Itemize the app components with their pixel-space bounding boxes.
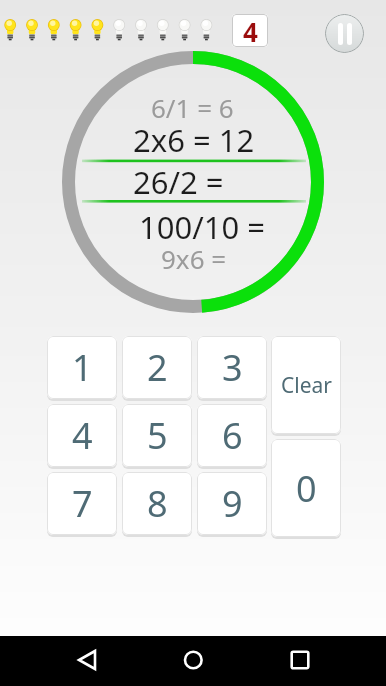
button[interactable]: 4 xyxy=(47,404,117,467)
staticText: 6/1 = 6 xyxy=(151,90,234,125)
staticText: 1 xyxy=(72,343,93,392)
staticText: 4 xyxy=(72,411,93,460)
staticText: 0 xyxy=(296,464,317,513)
button[interactable]: 2 xyxy=(122,336,192,399)
staticText: 7 xyxy=(72,479,93,528)
button[interactable]: 1 xyxy=(47,336,117,399)
button[interactable]: 5 xyxy=(122,404,192,467)
staticText: 9x6 = xyxy=(161,241,227,276)
button[interactable]: 7 xyxy=(47,472,117,535)
staticText: 4 xyxy=(243,14,258,47)
button[interactable]: 9 xyxy=(197,472,267,535)
staticText: 26/2 = xyxy=(133,161,224,203)
staticText: 3 xyxy=(222,343,243,392)
staticText: 100/10 = xyxy=(139,206,265,248)
staticText: 6 xyxy=(222,411,243,460)
staticText: Clear xyxy=(281,371,332,400)
staticText: 9 xyxy=(222,479,243,528)
button[interactable]: 6 xyxy=(197,404,267,467)
staticText: 8 xyxy=(147,479,168,528)
button[interactable]: 3 xyxy=(197,336,267,399)
button[interactable] xyxy=(0,636,128,686)
button[interactable] xyxy=(128,636,257,686)
button[interactable]: 8 xyxy=(122,472,192,535)
button[interactable] xyxy=(325,14,364,53)
button[interactable] xyxy=(257,636,386,686)
button[interactable]: Clear xyxy=(271,336,341,434)
staticText: 2x6 = 12 xyxy=(133,119,255,161)
staticText: 5 xyxy=(147,411,168,460)
staticText: 2 xyxy=(147,343,168,392)
button[interactable]: 0 xyxy=(271,439,341,537)
